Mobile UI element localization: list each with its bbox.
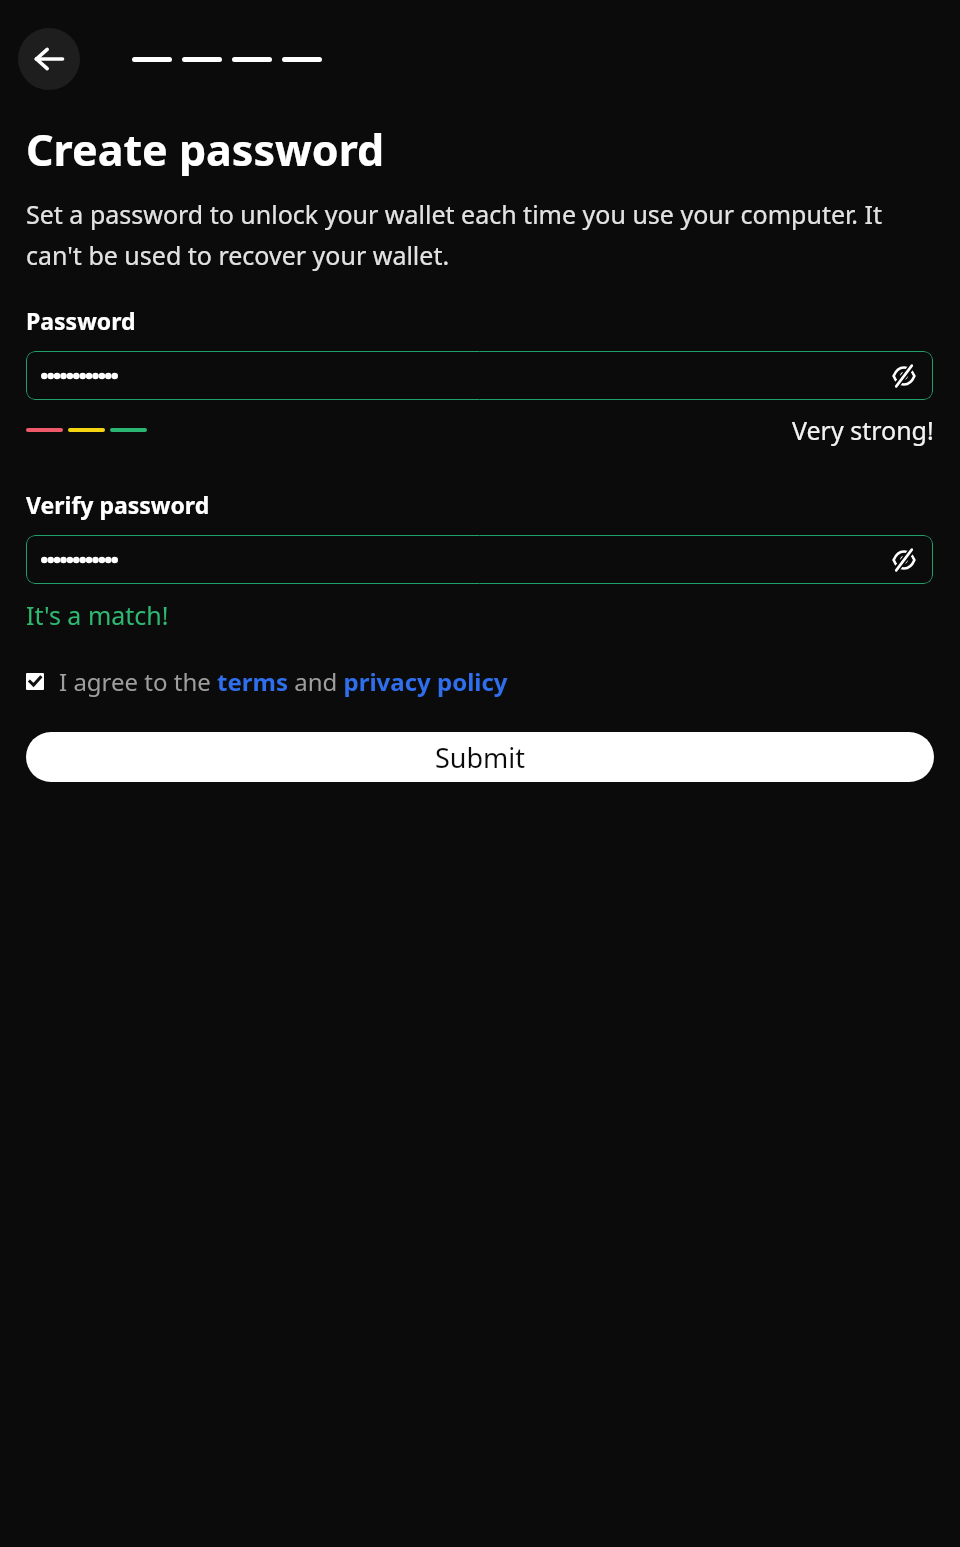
button[interactable]: Hide password — [889, 361, 919, 391]
button[interactable]: Back — [18, 28, 80, 90]
button[interactable]: Hide password — [26, 351, 933, 400]
button[interactable]: I agree to the terms and privacy policy — [26, 665, 940, 698]
staticText: Create password — [26, 120, 385, 179]
staticText: Verify password — [26, 489, 210, 520]
button[interactable]: Hide password — [889, 545, 919, 575]
button[interactable]: Hide password — [26, 535, 933, 584]
staticText: Submit — [435, 739, 526, 776]
staticText: I agree to the terms and privacy policy — [59, 665, 508, 698]
staticText: It's a match! — [26, 598, 169, 632]
button[interactable]: Submit — [26, 732, 934, 782]
staticText: Set a password to unlock your wallet eac… — [26, 197, 905, 273]
staticText: Very strong! — [792, 413, 934, 447]
staticText: Password — [26, 305, 136, 336]
